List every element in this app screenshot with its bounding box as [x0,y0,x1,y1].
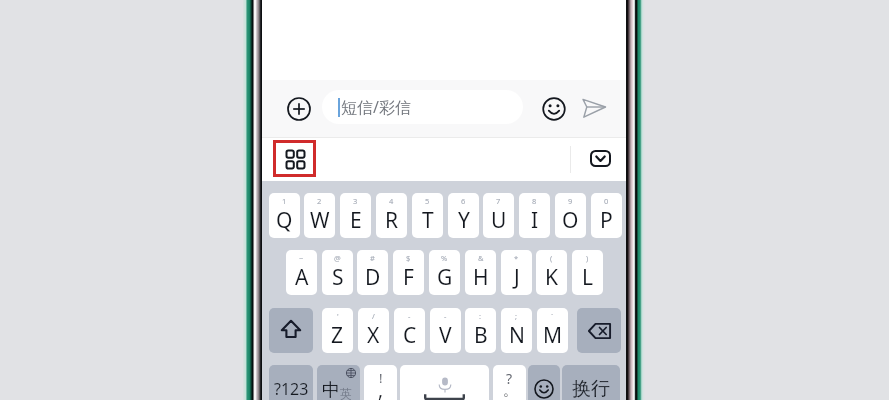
button[interactable]: Apps [273,140,316,177]
staticText: 英 [340,386,352,400]
staticText: - [408,311,411,321]
button[interactable]: J [501,250,532,295]
staticText: D [365,263,381,292]
staticText: ` [551,311,554,321]
button[interactable]: Switch language [317,365,360,400]
staticText: ( [550,253,553,263]
button[interactable]: V [430,308,461,353]
button[interactable]: N [501,308,532,353]
button[interactable]: U [483,193,514,238]
button[interactable]: X [358,308,389,353]
button[interactable]: A [286,250,317,295]
staticText: : [479,311,482,321]
staticText: Q [276,206,293,235]
staticText: & [478,253,484,263]
staticText: F [403,263,414,292]
button[interactable]: Z [322,308,353,353]
staticText: 3 [353,196,358,206]
staticText: 7 [496,196,501,206]
button[interactable]: W [304,193,335,238]
staticText: S [332,263,344,292]
staticText: 。 [503,382,517,400]
button[interactable]: K [536,250,567,295]
button[interactable]: O [555,193,586,238]
staticText: ! [379,369,383,387]
staticText: J [514,263,520,292]
staticText: $ [406,253,411,263]
button[interactable]: B [465,308,496,353]
staticText: O [562,206,579,235]
button[interactable]: I [519,193,550,238]
staticText: W [310,206,330,235]
staticText: C [403,321,417,350]
staticText: I [531,206,539,235]
button[interactable]: Backspace [577,308,621,353]
staticText: ?123 [274,378,309,400]
staticText: X [367,321,380,350]
button[interactable]: Question period [493,365,526,400]
button[interactable]: S [322,250,353,295]
button[interactable]: Exclamation comma [364,365,397,400]
button[interactable]: P [591,193,622,238]
button[interactable]: Send [581,98,611,128]
staticText: E [350,206,362,235]
staticText: 4 [389,196,394,206]
staticText: N [509,321,525,350]
staticText: # [370,253,375,263]
button[interactable]: Hide keyboard [590,150,611,167]
staticText: R [385,206,399,235]
button[interactable]: F [393,250,424,295]
button[interactable]: Q [269,193,300,238]
staticText: M [543,321,563,350]
button[interactable]: Add attachment [282,92,316,126]
staticText: V [439,321,452,350]
button[interactable]: Emoji [537,92,571,126]
button[interactable]: Emoji keyboard [528,365,560,400]
staticText: ) [586,253,589,263]
staticText: P [600,206,613,235]
staticText: 短信/彩信 [341,96,411,118]
button[interactable]: R [376,193,407,238]
staticText: L [582,263,594,292]
button[interactable]: G [429,250,460,295]
button[interactable]: Enter [562,365,620,400]
staticText: U [491,206,507,235]
staticText: 8 [532,196,537,206]
staticText: ' [337,311,339,321]
staticText: 换行 [572,377,610,400]
staticText: % [441,253,448,263]
staticText: 6 [461,196,466,206]
staticText: B [474,321,488,350]
staticText: @ [334,253,341,263]
button[interactable]: D [357,250,388,295]
button[interactable]: L [572,250,603,295]
staticText: * [514,253,519,263]
staticText: 2 [317,196,322,206]
staticText: 中 [322,379,340,400]
staticText: Y [458,206,470,235]
button[interactable]: E [340,193,371,238]
staticText: ~ [299,253,304,263]
button[interactable]: C [394,308,425,353]
button[interactable]: Symbols [269,365,313,400]
staticText: Z [331,321,344,350]
button[interactable]: Shift [269,308,313,353]
staticText: H [473,263,489,292]
button[interactable]: Y [448,193,479,238]
button[interactable]: Space [400,365,489,400]
staticText: , [378,377,384,400]
staticText: ; [515,311,518,321]
button[interactable]: T [412,193,443,238]
staticText: ? [506,369,513,388]
button[interactable]: H [465,250,496,295]
staticText: 5 [425,196,430,206]
staticText: T [422,206,434,235]
button[interactable]: 短信/彩信 [322,90,523,124]
staticText: / [372,311,375,321]
staticText: - [444,311,447,321]
button[interactable]: M [537,308,568,353]
staticText: 0 [604,196,609,206]
staticText: 9 [568,196,573,206]
staticText: K [545,263,558,292]
staticText: 1 [282,196,287,206]
